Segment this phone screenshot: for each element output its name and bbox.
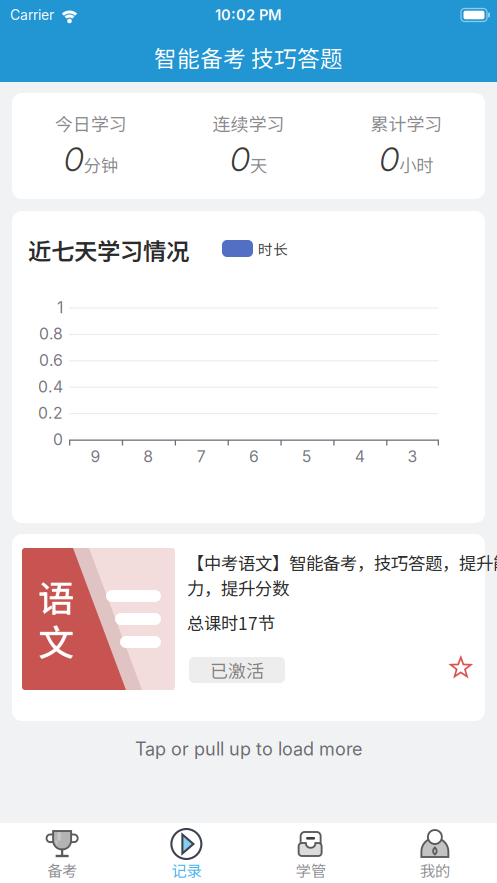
- staticText: 1: [57, 298, 63, 317]
- staticText: 0.8: [39, 324, 63, 343]
- staticText: 备考: [47, 859, 77, 881]
- staticText: 小时: [399, 152, 433, 177]
- staticText: 已激活: [210, 657, 264, 683]
- staticText: 我的: [420, 859, 450, 881]
- staticText: Carrier: [10, 6, 54, 23]
- staticText: 0.4: [38, 377, 63, 396]
- staticText: 4: [355, 447, 365, 466]
- staticText: 今日学习: [55, 110, 127, 136]
- staticText: 6: [249, 447, 259, 466]
- staticText: 智能备考 技巧答题: [154, 41, 343, 73]
- staticText: 9: [90, 447, 100, 466]
- staticText: 时长: [258, 238, 288, 259]
- button[interactable]: 语: [12, 534, 485, 721]
- button[interactable]: 备考: [0, 823, 124, 883]
- staticText: 学管: [296, 859, 326, 881]
- staticText: 0: [53, 430, 63, 449]
- staticText: 0: [64, 139, 84, 179]
- button[interactable]: 记录: [124, 823, 248, 883]
- staticText: 语: [38, 570, 74, 622]
- staticText: 记录: [171, 859, 201, 881]
- staticText: 10:02 PM: [215, 6, 282, 24]
- staticText: 文: [38, 614, 74, 666]
- button[interactable]: 我的: [373, 823, 497, 883]
- staticText: 5: [302, 447, 312, 466]
- staticText: 连续学习: [212, 110, 284, 136]
- staticText: 近七天学习情况: [28, 233, 189, 267]
- staticText: 3: [408, 447, 418, 466]
- staticText: 天: [250, 152, 267, 177]
- staticText: 8: [143, 447, 153, 466]
- staticText: 分钟: [84, 152, 118, 177]
- staticText: 0: [230, 139, 250, 179]
- staticText: 7: [197, 447, 206, 466]
- staticText: 0.6: [39, 351, 63, 370]
- staticText: 累计学习: [370, 110, 442, 136]
- staticText: 0: [379, 139, 399, 179]
- staticText: Tap or pull up to load more: [135, 738, 362, 760]
- staticText: 总课时17节: [187, 610, 275, 635]
- staticText: 0.2: [38, 404, 63, 423]
- button[interactable]: 学管: [248, 823, 373, 883]
- staticText: 【中考语文】智能备考，技巧答题，提升能力，提升分数: [187, 550, 497, 600]
